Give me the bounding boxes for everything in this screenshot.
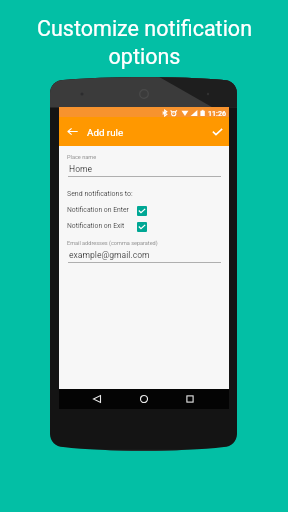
staticText: Email addresses (comma separated) [67,240,158,247]
staticText: Customize notification options [37,16,252,69]
staticText: Home [69,164,93,174]
button[interactable]: Save [205,119,230,144]
button[interactable]: Back [60,119,85,144]
staticText: 11:26 [208,109,226,117]
staticText: Notification on Exit [67,222,125,230]
staticText: Send notifications to: [67,190,133,198]
staticText: Add rule [87,127,124,138]
button[interactable]: Back [88,390,105,407]
staticText: example@gmail.com [69,250,150,260]
button[interactable]: Recents [181,390,198,407]
button[interactable]: Home [135,390,152,407]
button[interactable]: Notification on Enter [59,203,229,217]
staticText: Notification on Enter [67,206,129,214]
button[interactable]: Notification on Exit [59,219,229,233]
staticText: Place name [67,154,97,161]
